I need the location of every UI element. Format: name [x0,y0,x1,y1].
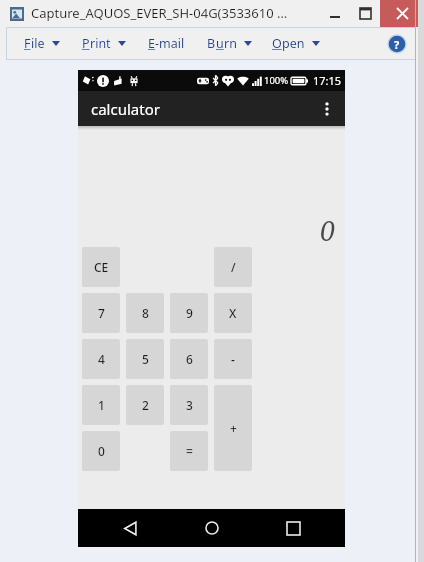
button[interactable]: Maximize [350,0,380,27]
button[interactable]: 5 [126,339,164,379]
staticText: 8 [142,305,149,321]
staticText: rn [224,35,237,52]
staticText: 0 [98,443,105,459]
staticText: X [229,305,237,321]
staticText: calculator [91,99,160,119]
staticText: P [82,35,90,52]
button[interactable]: 7 [82,293,120,333]
staticText: = [186,443,193,459]
staticText: / [231,259,236,275]
staticText: 4 [98,351,105,367]
button[interactable]: More options [309,91,345,126]
button[interactable]: 6 [170,339,208,379]
staticText: 17:15 [313,73,342,88]
staticText: - [231,351,235,367]
button[interactable]: 1 [82,385,120,425]
button[interactable]: O [270,31,322,56]
button[interactable]: 2 [126,385,164,425]
staticText: 1 [98,397,105,413]
button[interactable]: P [80,31,128,56]
staticText: ? [394,37,400,52]
button[interactable]: Minimize [320,0,350,27]
staticText: 100% [264,74,289,87]
staticText: O [272,35,282,52]
button[interactable]: 8 [126,293,164,333]
staticText: ile [31,35,45,52]
button[interactable]: B [205,31,254,56]
button[interactable]: Recent apps [263,509,323,547]
staticText: CE [94,259,109,275]
button[interactable]: 4 [82,339,120,379]
button[interactable]: Back [100,509,160,547]
staticText: 9 [186,305,193,321]
staticText: F [24,35,31,52]
button[interactable]: + [214,385,252,471]
staticText: 0 [78,212,335,249]
staticText: u [216,35,224,52]
staticText: B [207,35,216,52]
button[interactable]: 0 [82,431,120,471]
staticText: rint [90,35,111,52]
staticText: 7 [98,305,105,321]
button[interactable]: E [146,31,187,56]
staticText: + [230,420,237,436]
button[interactable]: = [170,431,208,471]
staticText: 3 [186,397,193,413]
button[interactable]: Close [380,0,424,27]
staticText: E [148,35,155,52]
staticText: 2 [142,397,149,413]
staticText: 5 [142,351,149,367]
button[interactable]: F [22,31,62,56]
button[interactable]: - [214,339,252,379]
staticText: 6 [186,351,193,367]
button[interactable]: CE [82,247,120,287]
staticText: -mail [155,35,185,52]
button[interactable]: Help [388,35,406,53]
button[interactable]: Home [182,509,242,547]
staticText: Capture_AQUOS_EVER_SH-04G(3533610 … [31,4,288,22]
button[interactable]: 3 [170,385,208,425]
button[interactable]: X [214,293,252,333]
staticText: pen [282,35,305,52]
button[interactable]: 9 [170,293,208,333]
button[interactable]: / [214,247,252,287]
